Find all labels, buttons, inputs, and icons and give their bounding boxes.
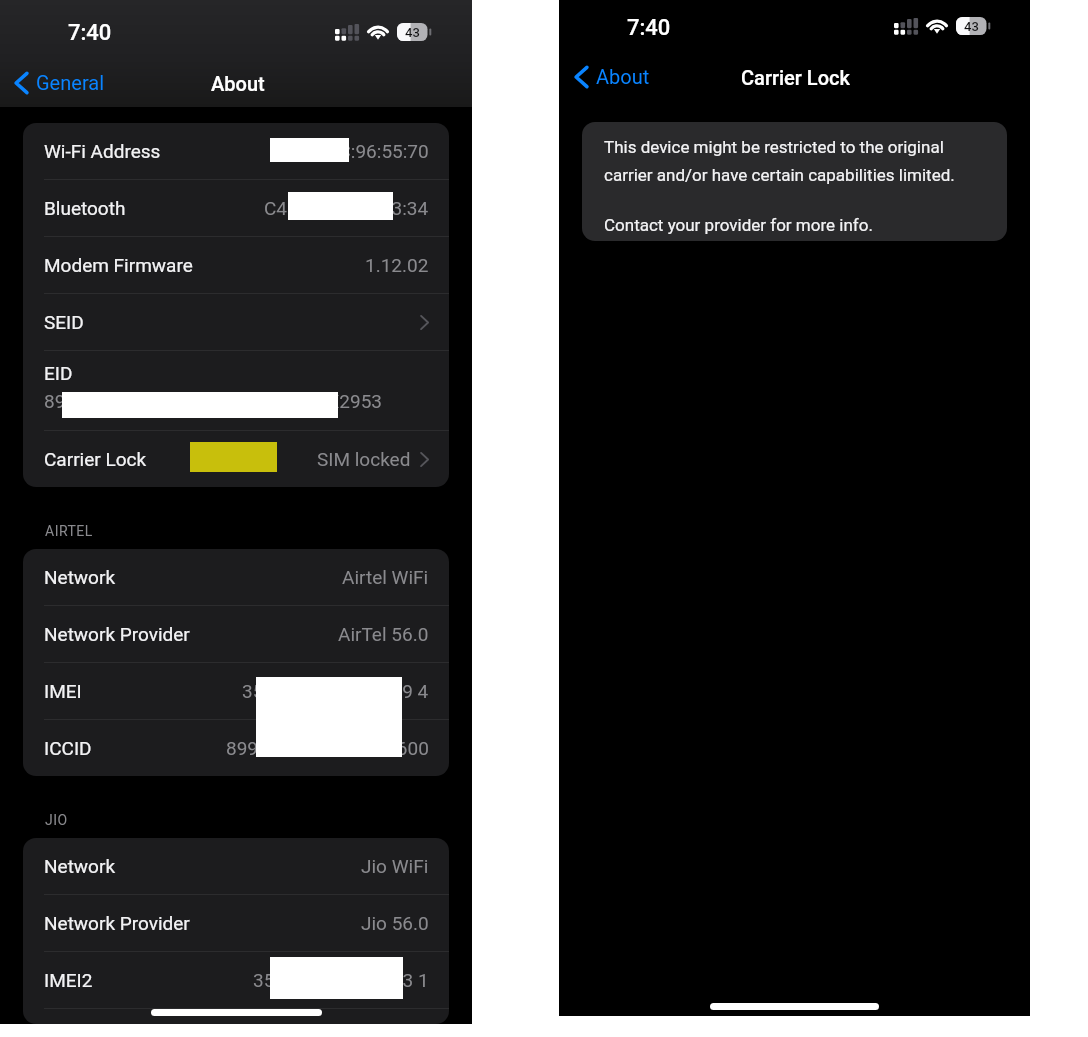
staticText: 43: [964, 19, 979, 34]
staticText: Contact your provider for more info.: [604, 215, 873, 235]
staticText: IMEI: [44, 680, 82, 702]
button[interactable]: Network: [23, 549, 449, 605]
staticText: SEID: [44, 311, 84, 333]
staticText: 1.12.02: [365, 254, 429, 276]
staticText: Network: [44, 566, 116, 588]
staticText: SIM locked: [317, 448, 411, 470]
staticText: JIO: [45, 812, 68, 828]
staticText: AIRTEL: [45, 523, 93, 539]
staticText: 7:40: [627, 15, 671, 41]
staticText: Jio 56.0: [361, 912, 429, 934]
button[interactable]: Back to General: [9, 65, 110, 100]
button[interactable]: IMEI2: [23, 952, 449, 1008]
staticText: Jio WiFi: [361, 855, 429, 877]
staticText: IMEI2: [44, 969, 93, 991]
staticText: 350000000000003 1: [253, 969, 429, 991]
button[interactable]: Network: [23, 838, 449, 894]
staticText: ICCID: [44, 737, 92, 759]
button[interactable]: EID: [23, 351, 449, 430]
staticText: EID: [44, 362, 73, 384]
staticText: 43: [405, 25, 420, 40]
staticText: About: [211, 72, 265, 95]
staticText: Network Provider: [44, 912, 190, 934]
staticText: 89XXXXXXXXXXXXXXXXXXXXXXX2953: [44, 390, 383, 412]
button[interactable]: Network Provider: [23, 895, 449, 951]
staticText: AirTel 56.0: [338, 623, 429, 645]
staticText: Airtel WiFi: [342, 566, 429, 588]
staticText: C4:XXXXXXXX:3:34: [264, 197, 429, 219]
button[interactable]: ICCID: [23, 720, 449, 776]
button[interactable]: SEID: [23, 294, 449, 350]
staticText: 8990000000000000600: [226, 737, 429, 759]
staticText: 7:40: [68, 20, 112, 46]
button[interactable]: [23, 1009, 449, 1024]
button[interactable]: Carrier Lock: [23, 431, 449, 487]
button[interactable]: Back to About: [569, 59, 655, 94]
staticText: Modem Firmware: [44, 254, 193, 276]
button[interactable]: Modem Firmware: [23, 237, 449, 293]
staticText: Network Provider: [44, 623, 190, 645]
staticText: Network: [44, 855, 116, 877]
button[interactable]: IMEI: [23, 663, 449, 719]
staticText: Carrier Lock: [44, 448, 147, 470]
staticText: This device might be restricted to the o…: [604, 137, 955, 185]
button[interactable]: Wi-Fi Address: [23, 123, 449, 179]
staticText: Bluetooth: [44, 197, 126, 219]
button[interactable]: Bluetooth: [23, 180, 449, 236]
button[interactable]: Network Provider: [23, 606, 449, 662]
staticText: 1A:2B:3C:96:55:70: [273, 140, 429, 162]
staticText: 3500000000000009 4: [242, 680, 429, 702]
staticText: Wi-Fi Address: [44, 140, 161, 162]
staticText: Carrier Lock: [741, 66, 850, 89]
staticText: General: [36, 71, 105, 94]
staticText: About: [596, 65, 650, 88]
